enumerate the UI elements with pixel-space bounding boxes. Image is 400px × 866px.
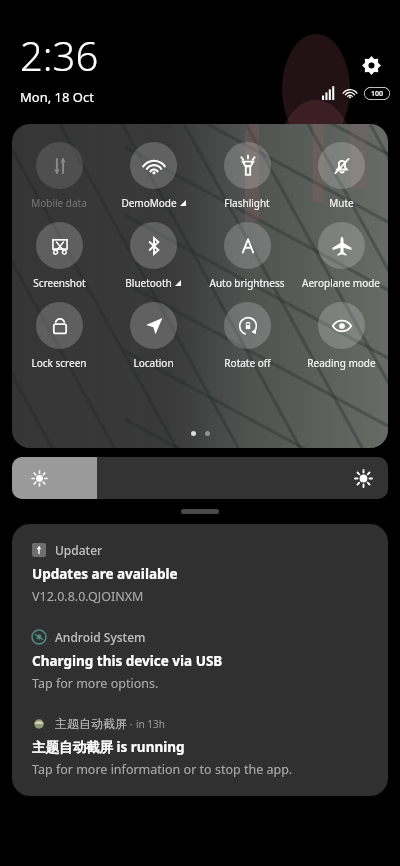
- staticText: Flashlight: [224, 196, 270, 210]
- staticText: Android System: [55, 629, 146, 645]
- button[interactable]: Aeroplane mode: [294, 220, 388, 292]
- staticText: in 13h: [136, 717, 165, 731]
- button[interactable]: Rotate off: [200, 300, 294, 372]
- button[interactable]: Brightness: [12, 457, 388, 499]
- staticText: V12.0.8.0.QJOINXM: [32, 588, 144, 605]
- staticText: 主题自动截屏: [55, 716, 127, 731]
- staticText: Reading mode: [307, 356, 376, 370]
- staticText: ·: [127, 716, 136, 731]
- staticText: Auto brightness: [209, 276, 285, 290]
- button[interactable]: Reading mode: [294, 300, 388, 372]
- staticText: Mute: [329, 196, 354, 210]
- staticText: Tap for more options.: [32, 675, 159, 692]
- staticText: Screenshot: [33, 276, 86, 290]
- button[interactable]: Settings: [356, 50, 386, 80]
- button[interactable]: DemoMode: [106, 140, 200, 212]
- button[interactable]: Android System: [12, 617, 388, 704]
- staticText: Bluetooth: [125, 276, 172, 290]
- button[interactable]: Mute: [294, 140, 388, 212]
- staticText: 2:36: [20, 28, 99, 82]
- staticText: Tap for more information or to stop the …: [32, 761, 293, 778]
- button[interactable]: Flashlight: [200, 140, 294, 212]
- staticText: Location: [133, 356, 174, 370]
- staticText: Charging this device via USB: [32, 652, 223, 670]
- staticText: Lock screen: [31, 356, 87, 370]
- staticText: 100: [371, 89, 384, 99]
- button[interactable]: 主题自动截屏: [12, 704, 388, 790]
- staticText: DemoMode: [121, 196, 177, 210]
- button[interactable]: Screenshot: [12, 220, 106, 292]
- staticText: Updater: [55, 542, 103, 558]
- staticText: Mon, 18 Oct: [20, 88, 94, 106]
- button[interactable]: Updater: [12, 530, 388, 617]
- staticText: Mobile data: [31, 196, 87, 210]
- button[interactable]: Location: [106, 300, 200, 372]
- staticText: Aeroplane mode: [302, 276, 380, 290]
- button[interactable]: Auto brightness: [200, 220, 294, 292]
- staticText: 主题自动截屏 is running: [32, 738, 185, 756]
- button[interactable]: Lock screen: [12, 300, 106, 372]
- staticText: Rotate off: [224, 356, 271, 370]
- button[interactable]: Bluetooth: [106, 220, 200, 292]
- staticText: Updates are available: [32, 565, 178, 583]
- button[interactable]: Mobile data: [12, 140, 106, 212]
